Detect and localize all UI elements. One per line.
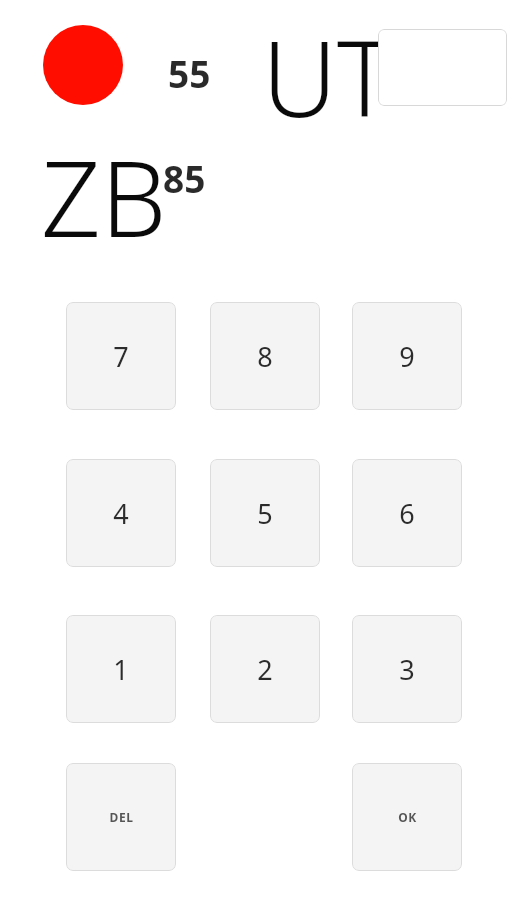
staticText: 2 — [257, 651, 273, 688]
staticText: 55 — [168, 48, 211, 98]
button[interactable]: 5 — [210, 459, 320, 567]
button[interactable]: 9 — [352, 302, 462, 410]
staticText: OK — [398, 809, 417, 825]
staticText: 7 — [113, 338, 129, 375]
staticText: DEL — [109, 809, 134, 825]
staticText: 4 — [113, 495, 129, 532]
staticText: 3 — [399, 651, 415, 688]
button[interactable]: 4 — [66, 459, 176, 567]
staticText: ZB — [41, 126, 167, 268]
button[interactable]: OK — [352, 763, 462, 871]
button[interactable]: 7 — [66, 302, 176, 410]
button[interactable]: 1 — [66, 615, 176, 723]
staticText: 8 — [257, 338, 273, 375]
button[interactable]: 6 — [352, 459, 462, 567]
staticText: 9 — [399, 338, 415, 375]
button[interactable]: 3 — [352, 615, 462, 723]
staticText: UT — [262, 6, 393, 148]
staticText: 85 — [163, 153, 206, 203]
button[interactable]: DEL — [66, 763, 176, 871]
button[interactable]: 8 — [210, 302, 320, 410]
button[interactable]: Text input field — [378, 29, 507, 106]
button[interactable]: 2 — [210, 615, 320, 723]
staticText: 6 — [399, 495, 415, 532]
staticText: 5 — [257, 495, 273, 532]
other: Status indicator — [43, 25, 123, 105]
staticText: 1 — [113, 651, 129, 688]
